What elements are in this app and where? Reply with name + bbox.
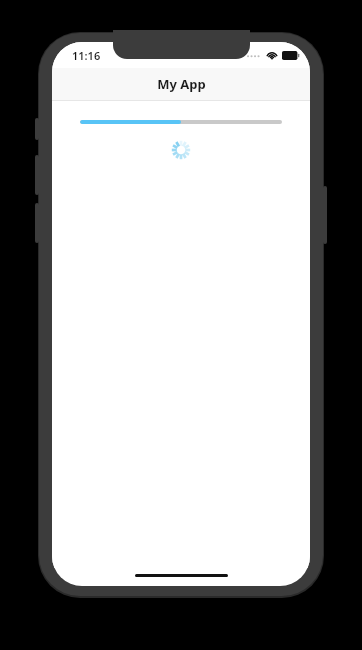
button[interactable]: Home bbox=[135, 574, 228, 577]
staticText: 11:16 bbox=[72, 48, 101, 63]
staticText: My App bbox=[157, 75, 206, 93]
